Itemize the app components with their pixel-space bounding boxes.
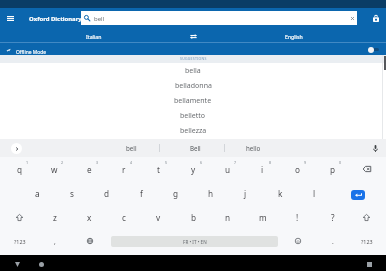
staticText: FR • IT • EN xyxy=(183,239,207,245)
button[interactable]: belletto xyxy=(0,108,386,123)
button[interactable]: q xyxy=(2,157,37,181)
button[interactable]: Enter xyxy=(340,181,386,205)
staticText: 9 xyxy=(304,160,307,165)
button[interactable]: Recent apps xyxy=(360,255,378,271)
button[interactable]: a xyxy=(20,181,55,205)
staticText: ! xyxy=(296,212,299,223)
staticText: ?123 xyxy=(361,238,373,245)
button[interactable]: Voice input xyxy=(367,142,383,154)
button[interactable]: Switch keyboard xyxy=(72,229,107,253)
staticText: x xyxy=(87,212,92,223)
staticText: d xyxy=(104,188,110,199)
button[interactable]: belladonna xyxy=(0,78,386,93)
button[interactable]: bellamente xyxy=(0,93,386,108)
staticText: h xyxy=(208,188,214,199)
button[interactable]: English xyxy=(223,28,364,43)
staticText: , xyxy=(54,237,56,246)
staticText: c xyxy=(122,212,126,223)
button[interactable]: , xyxy=(37,229,72,253)
button[interactable]: Expand suggestions xyxy=(11,143,22,154)
button[interactable]: Clear search xyxy=(347,13,357,23)
staticText: bella xyxy=(185,66,201,76)
button[interactable]: Emoji xyxy=(280,229,315,253)
staticText: v xyxy=(156,212,161,223)
button[interactable]: s xyxy=(54,181,89,205)
button[interactable]: ?123 xyxy=(349,229,384,253)
button[interactable]: n xyxy=(210,205,245,229)
staticText: z xyxy=(53,212,57,223)
staticText: belletto xyxy=(180,111,206,121)
button[interactable]: t xyxy=(141,157,176,181)
button[interactable]: bella xyxy=(0,63,386,78)
staticText: bellamente xyxy=(174,96,212,106)
staticText: r xyxy=(122,164,126,175)
staticText: o xyxy=(295,164,300,175)
button[interactable]: j xyxy=(228,181,263,205)
staticText: n xyxy=(225,212,231,223)
button[interactable]: bell xyxy=(81,11,357,25)
button[interactable]: h xyxy=(193,181,228,205)
button[interactable]: d xyxy=(89,181,124,205)
staticText: . xyxy=(332,237,334,246)
button[interactable]: bellezza xyxy=(0,123,386,138)
staticText: 7 xyxy=(234,160,237,165)
button[interactable]: Shift xyxy=(349,205,384,229)
staticText: k xyxy=(278,188,283,199)
staticText: hello xyxy=(246,144,261,152)
staticText: 1 xyxy=(26,160,29,165)
button[interactable]: Offline Mode xyxy=(0,44,386,55)
button[interactable]: Shift xyxy=(2,205,37,229)
button[interactable]: Backspace xyxy=(349,157,384,181)
staticText: 2 xyxy=(61,160,64,165)
staticText: 3 xyxy=(96,160,99,165)
staticText: s xyxy=(70,188,74,199)
staticText: m xyxy=(259,212,267,223)
button[interactable]: Offline Mode toggle xyxy=(364,44,384,55)
staticText: Oxford Dictionary xyxy=(29,15,82,23)
button[interactable]: f xyxy=(124,181,159,205)
button[interactable]: hello xyxy=(225,139,281,157)
button[interactable]: Italian xyxy=(23,28,164,43)
staticText: English xyxy=(285,33,303,40)
staticText: 6 xyxy=(200,160,203,165)
staticText: Bell xyxy=(190,144,201,152)
button[interactable]: c xyxy=(106,205,141,229)
button[interactable]: g xyxy=(158,181,193,205)
button[interactable]: y xyxy=(176,157,211,181)
button[interactable]: p xyxy=(315,157,350,181)
button[interactable]: e xyxy=(72,157,107,181)
button[interactable]: Home xyxy=(32,255,50,271)
staticText: SUGGESTIONS xyxy=(180,56,207,61)
button[interactable]: v xyxy=(141,205,176,229)
button[interactable]: z xyxy=(37,205,72,229)
button[interactable]: ? xyxy=(315,205,350,229)
button[interactable]: Open navigation menu xyxy=(2,12,19,25)
button[interactable]: Lock xyxy=(368,11,384,25)
staticText: bell xyxy=(126,144,137,152)
button[interactable]: r xyxy=(106,157,141,181)
button[interactable]: o xyxy=(280,157,315,181)
staticText: ?123 xyxy=(14,238,26,245)
button[interactable]: bell xyxy=(103,139,159,157)
staticText: p xyxy=(330,164,336,175)
staticText: j xyxy=(244,188,247,199)
button[interactable]: b xyxy=(176,205,211,229)
staticText: e xyxy=(87,164,92,175)
button[interactable]: m xyxy=(245,205,280,229)
staticText: Italian xyxy=(86,33,102,40)
button[interactable]: i xyxy=(245,157,280,181)
button[interactable]: Bell xyxy=(167,139,223,157)
button[interactable]: Swap languages xyxy=(178,28,208,43)
button[interactable]: l xyxy=(297,181,332,205)
button[interactable]: u xyxy=(210,157,245,181)
staticText: g xyxy=(173,188,179,199)
button[interactable]: ?123 xyxy=(2,229,37,253)
button[interactable]: ! xyxy=(280,205,315,229)
staticText: Offline Mode xyxy=(16,49,46,56)
button[interactable]: w xyxy=(37,157,72,181)
button[interactable]: Back xyxy=(8,255,26,271)
button[interactable]: FR • IT • EN xyxy=(105,229,283,253)
button[interactable]: x xyxy=(72,205,107,229)
button[interactable]: k xyxy=(263,181,298,205)
